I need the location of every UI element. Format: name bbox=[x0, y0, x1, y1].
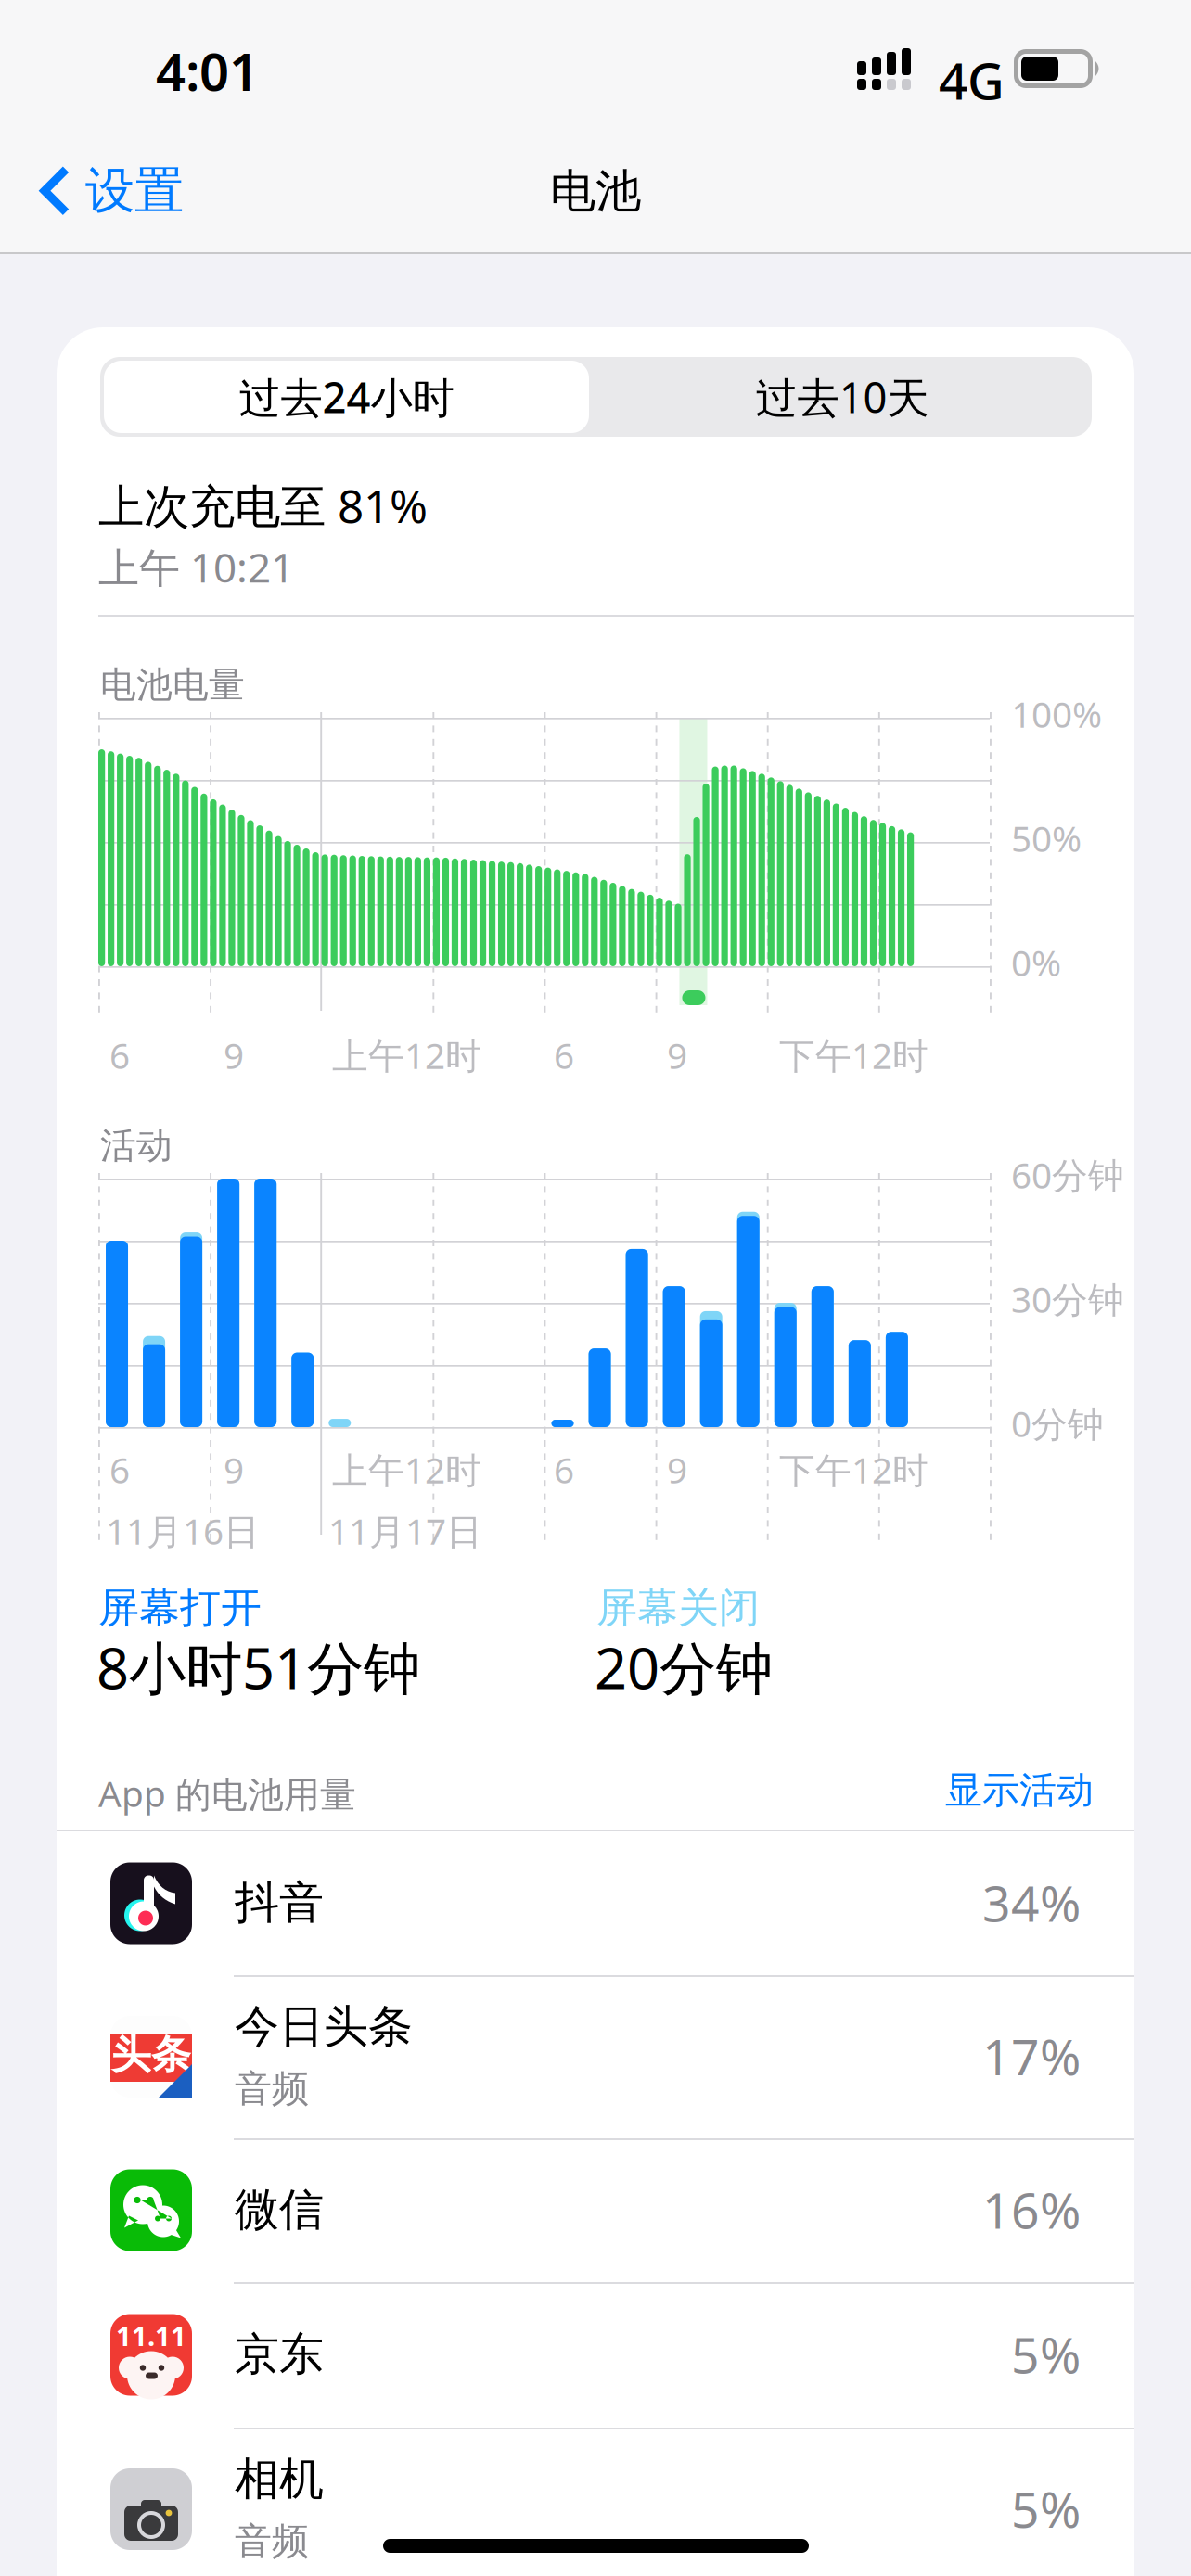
staticText: 6 bbox=[554, 1446, 574, 1493]
staticText: 17% bbox=[982, 2023, 1081, 2089]
staticText: 4G bbox=[939, 46, 1005, 114]
staticText: 上午 10:21 bbox=[98, 540, 294, 594]
staticText: 屏幕关闭 bbox=[596, 1583, 760, 1633]
staticText: 屏幕打开 bbox=[98, 1583, 262, 1633]
staticText: 11月16日 bbox=[106, 1507, 260, 1554]
staticText: 过去24小时 bbox=[239, 369, 454, 425]
staticText: 显示活动 bbox=[945, 1767, 1094, 1813]
staticText: 设置 bbox=[85, 160, 184, 221]
staticText: 0分钟 bbox=[1011, 1399, 1104, 1447]
button[interactable]: 11.11 bbox=[57, 2282, 1134, 2428]
button[interactable]: 显示活动 bbox=[928, 1753, 1110, 1828]
button[interactable]: 过去10天 bbox=[593, 357, 1092, 437]
staticText: 20分钟 bbox=[595, 1629, 773, 1705]
staticText: App 的电池用量 bbox=[98, 1769, 356, 1817]
staticText: 4:01 bbox=[156, 36, 259, 105]
staticText: 下午12时 bbox=[779, 1446, 928, 1493]
staticText: 相机 bbox=[235, 2452, 324, 2506]
staticText: 抖音 bbox=[235, 1875, 324, 1930]
staticText: 9 bbox=[224, 1031, 244, 1079]
staticText: 11月17日 bbox=[328, 1507, 482, 1554]
button[interactable]: 过去24小时 bbox=[100, 357, 593, 437]
staticText: 电池电量 bbox=[100, 663, 245, 707]
staticText: 下午12时 bbox=[779, 1031, 928, 1079]
button[interactable]: 微信 bbox=[57, 2138, 1134, 2282]
staticText: 100% bbox=[1011, 690, 1102, 737]
staticText: 京东 bbox=[235, 2327, 324, 2382]
staticText: 30分钟 bbox=[1011, 1275, 1124, 1323]
staticText: 8小时51分钟 bbox=[96, 1629, 420, 1705]
staticText: 6 bbox=[109, 1446, 130, 1493]
button[interactable]: 设置 bbox=[0, 134, 210, 247]
staticText: 6 bbox=[554, 1031, 574, 1079]
button[interactable]: 抖音 bbox=[57, 1831, 1134, 1975]
staticText: 16% bbox=[982, 2177, 1081, 2242]
staticText: 6 bbox=[109, 1031, 130, 1079]
button[interactable]: 相机 bbox=[57, 2428, 1134, 2576]
staticText: 50% bbox=[1011, 814, 1082, 862]
staticText: 上次充电至 81% bbox=[98, 475, 428, 536]
staticText: 头条 bbox=[111, 2031, 191, 2079]
staticText: 微信 bbox=[235, 2182, 324, 2237]
staticText: 今日头条 bbox=[235, 1999, 413, 2054]
staticText: 9 bbox=[224, 1446, 244, 1493]
staticText: 过去10天 bbox=[756, 369, 929, 425]
staticText: 5% bbox=[1011, 2476, 1081, 2542]
staticText: 音频 bbox=[235, 2519, 309, 2564]
staticText: 音频 bbox=[235, 2066, 309, 2112]
staticText: 9 bbox=[667, 1031, 687, 1079]
staticText: 活动 bbox=[100, 1124, 173, 1168]
staticText: 60分钟 bbox=[1011, 1151, 1124, 1198]
staticText: 9 bbox=[667, 1446, 687, 1493]
staticText: 电池 bbox=[550, 163, 641, 219]
staticText: 34% bbox=[982, 1870, 1081, 1936]
staticText: 5% bbox=[1011, 2321, 1081, 2387]
staticText: 11.11 bbox=[116, 2317, 186, 2353]
staticText: 上午12时 bbox=[332, 1446, 481, 1493]
staticText: 上午12时 bbox=[332, 1031, 481, 1079]
button[interactable]: 头条 bbox=[57, 1975, 1134, 2138]
staticText: 0% bbox=[1011, 938, 1061, 986]
